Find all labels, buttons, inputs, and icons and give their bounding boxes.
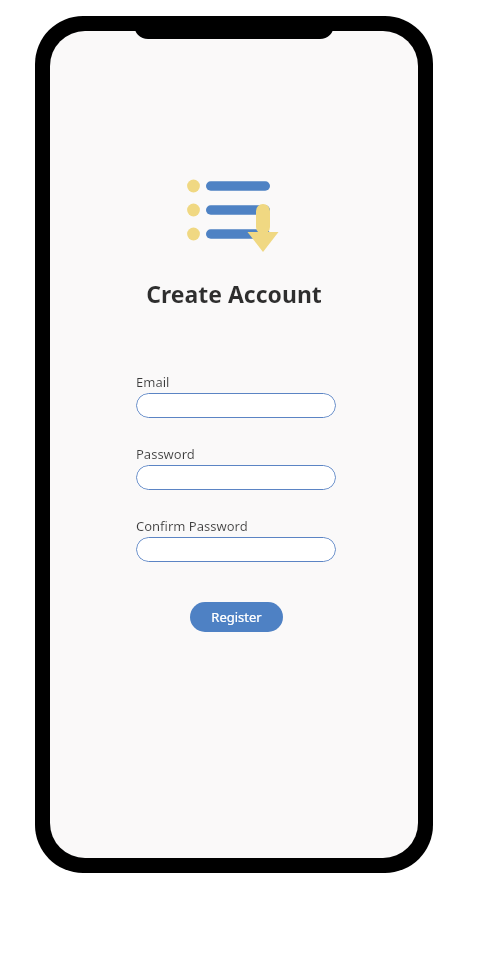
staticText: Create Account <box>146 278 322 309</box>
staticText: Password <box>136 445 195 463</box>
staticText: Confirm Password <box>136 517 248 535</box>
button[interactable] <box>136 393 336 418</box>
button[interactable]: Register <box>190 602 283 632</box>
staticText: Email <box>136 373 170 391</box>
button[interactable] <box>136 465 336 490</box>
button[interactable] <box>136 537 336 562</box>
staticText: Register <box>211 608 262 626</box>
